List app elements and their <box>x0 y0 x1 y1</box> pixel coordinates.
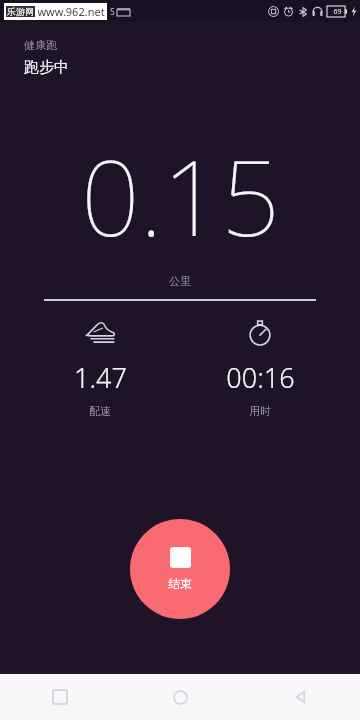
staticText: www.962.net <box>37 4 105 19</box>
button[interactable]: 结束 <box>130 519 230 619</box>
staticText: 69 <box>333 7 342 17</box>
staticText: 健康跑 <box>24 38 57 52</box>
staticText: 公里 <box>169 274 191 288</box>
staticText: 乐游网 <box>7 6 34 17</box>
button[interactable]: Back <box>240 674 360 720</box>
staticText: 配速 <box>89 404 111 418</box>
staticText: 0.15 <box>81 126 280 266</box>
staticText: 00:16 <box>226 359 295 396</box>
staticText: 用时 <box>249 404 271 418</box>
staticText: 跑步中 <box>24 58 69 77</box>
staticText: S <box>110 6 115 17</box>
button[interactable]: Home <box>120 674 240 720</box>
staticText: 结束 <box>168 576 192 591</box>
staticText: 1.47 <box>74 359 127 396</box>
button[interactable]: Recents <box>0 674 120 720</box>
